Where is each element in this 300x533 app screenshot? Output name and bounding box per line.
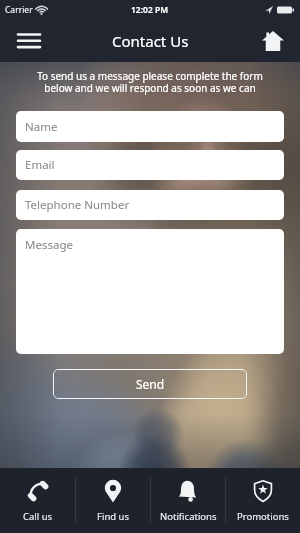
- button[interactable]: [12, 24, 46, 58]
- staticText: Find us: [97, 510, 129, 523]
- staticText: Notifications: [160, 510, 217, 523]
- button[interactable]: Message: [16, 229, 284, 354]
- staticText: Contact Us: [112, 31, 189, 51]
- button[interactable]: Send: [53, 369, 247, 399]
- staticText: Name: [25, 119, 58, 135]
- staticText: Call us: [23, 510, 53, 523]
- button[interactable]: Name: [16, 111, 284, 142]
- button[interactable]: Promotions: [226, 468, 300, 533]
- staticText: Email: [25, 157, 55, 173]
- button[interactable]: Call us: [0, 468, 75, 533]
- staticText: Promotions: [237, 510, 289, 523]
- button[interactable]: Notifications: [151, 468, 225, 533]
- button[interactable]: Find us: [76, 468, 150, 533]
- staticText: Send: [136, 376, 165, 392]
- button[interactable]: [256, 24, 290, 58]
- staticText: 12:02 PM: [131, 4, 169, 16]
- staticText: Carrier: [5, 4, 33, 16]
- staticText: To send us a message please complete the…: [0, 69, 300, 95]
- staticText: Message: [25, 237, 73, 253]
- staticText: Telephone Number: [25, 197, 130, 213]
- button[interactable]: Email: [16, 150, 284, 180]
- button[interactable]: Telephone Number: [16, 190, 284, 220]
